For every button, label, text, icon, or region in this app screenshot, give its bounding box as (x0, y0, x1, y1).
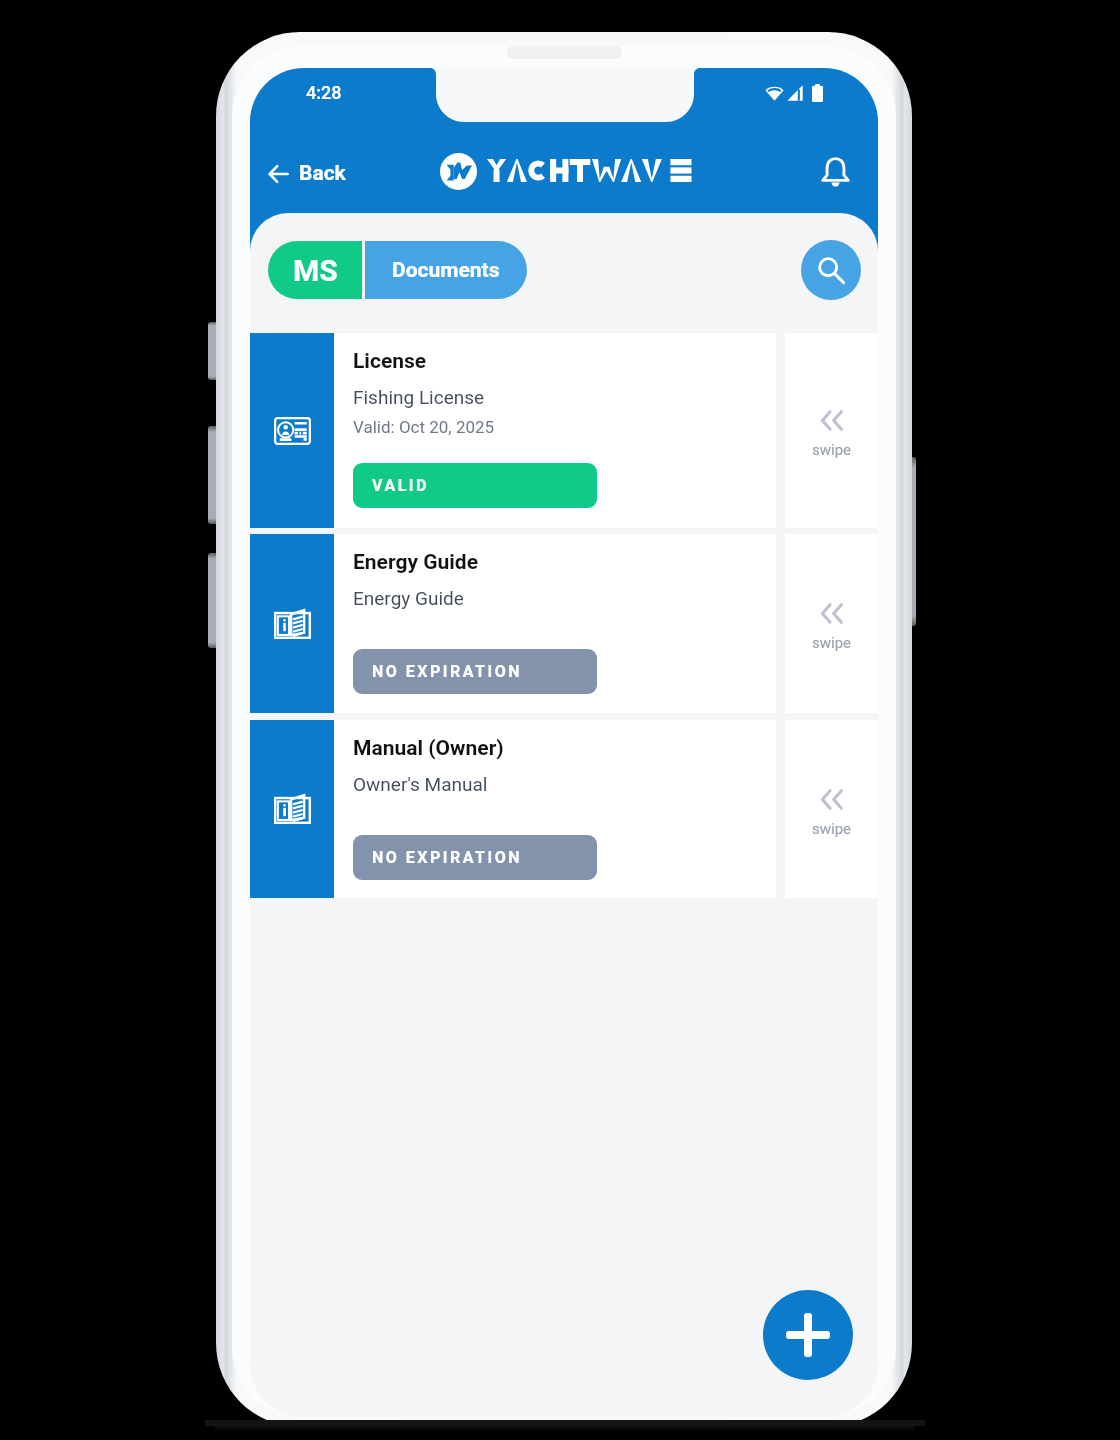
button[interactable]: Back (263, 152, 352, 195)
staticText: Back (299, 161, 346, 186)
button[interactable]: Add document (763, 1290, 853, 1380)
button[interactable]: Swipe for actions (785, 333, 878, 528)
button[interactable]: Documents (365, 241, 527, 299)
staticText: Manual (Owner) (353, 736, 504, 761)
staticText: MS (293, 253, 338, 288)
staticText: License (353, 349, 427, 374)
staticText: NO EXPIRATION (372, 848, 522, 867)
staticText: swipe (812, 441, 852, 459)
staticText: Energy Guide (353, 587, 464, 609)
button[interactable]: Search (801, 240, 861, 300)
staticText: Fishing License (353, 386, 485, 408)
button[interactable]: Manual (Owner) (334, 720, 776, 898)
button[interactable]: MS (268, 241, 362, 299)
button[interactable]: Energy Guide (334, 534, 776, 713)
staticText: Owner's Manual (353, 773, 488, 795)
staticText: swipe (812, 634, 852, 652)
staticText: 4:28 (306, 82, 342, 103)
button[interactable]: Swipe for actions (785, 720, 878, 898)
button[interactable]: Notifications (811, 148, 859, 196)
staticText: VALID (372, 476, 429, 495)
staticText: swipe (812, 820, 852, 838)
button[interactable]: License (334, 333, 776, 528)
staticText: Energy Guide (353, 550, 479, 575)
button[interactable]: VALID (353, 463, 597, 508)
staticText: Documents (392, 258, 500, 283)
button[interactable]: NO EXPIRATION (353, 649, 597, 694)
button[interactable]: Swipe for actions (785, 534, 878, 713)
button[interactable]: NO EXPIRATION (353, 835, 597, 880)
staticText: NO EXPIRATION (372, 662, 522, 681)
staticText: Valid: Oct 20, 2025 (353, 417, 495, 437)
